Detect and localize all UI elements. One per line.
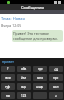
button[interactable]: где (33, 66, 47, 72)
staticText: Привет! Это тестовое сообщение для прове… (13, 31, 62, 41)
staticText: ⌫ (54, 68, 59, 71)
button[interactable]: Сообщения (0, 4, 64, 10)
staticText: ? (7, 67, 9, 71)
button[interactable]: шщъ (33, 83, 47, 90)
staticText: Сообщения (21, 5, 44, 10)
button[interactable]: ↵ (49, 92, 63, 99)
button[interactable]: жзи (1, 74, 15, 81)
staticText: ыьэ (53, 85, 59, 89)
staticText: юя (6, 94, 11, 98)
staticText: жзи (5, 76, 11, 80)
button[interactable]: йкл (17, 74, 31, 81)
button[interactable]: абв (17, 66, 31, 72)
button[interactable]: мно (33, 74, 47, 81)
button[interactable]: туф (1, 83, 15, 90)
staticText: прс (53, 76, 59, 80)
staticText: Вчера 12:05 (1, 23, 22, 28)
staticText: 123 (21, 94, 27, 98)
staticText: шщъ (36, 85, 44, 89)
staticText: туф (5, 85, 11, 89)
staticText: привет (2, 59, 14, 64)
button[interactable]: ыьэ (49, 83, 63, 90)
staticText: мно (37, 76, 43, 80)
button[interactable]: юя (1, 92, 15, 99)
button[interactable]: прс (49, 74, 63, 81)
staticText: хцч (21, 85, 27, 89)
staticText: где (38, 67, 43, 71)
staticText: абв (21, 67, 27, 71)
button[interactable]: хцч (17, 83, 31, 90)
button[interactable]: 123 (17, 92, 31, 99)
staticText: Тема: Новая (1, 16, 25, 21)
staticText: йкл (21, 76, 27, 80)
staticText: ↵ (55, 94, 58, 97)
button[interactable]: ? (1, 66, 15, 72)
button[interactable]: ⌫ (49, 66, 63, 72)
